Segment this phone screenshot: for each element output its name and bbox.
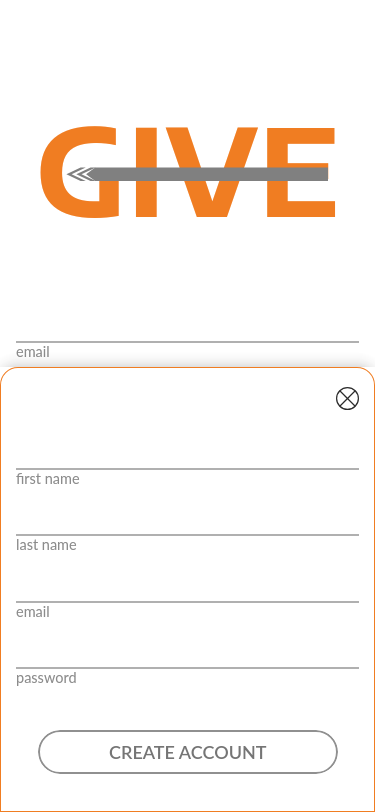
staticText: GIVE bbox=[35, 92, 340, 243]
button[interactable]: CREATE ACCOUNT bbox=[38, 730, 338, 774]
staticText: first name bbox=[16, 470, 80, 487]
staticText: email bbox=[16, 343, 50, 360]
staticText: password bbox=[16, 669, 77, 686]
staticText: email bbox=[16, 603, 50, 620]
button[interactable]: Close bbox=[336, 387, 359, 410]
staticText: CREATE ACCOUNT bbox=[109, 741, 267, 763]
staticText: last name bbox=[16, 536, 77, 553]
